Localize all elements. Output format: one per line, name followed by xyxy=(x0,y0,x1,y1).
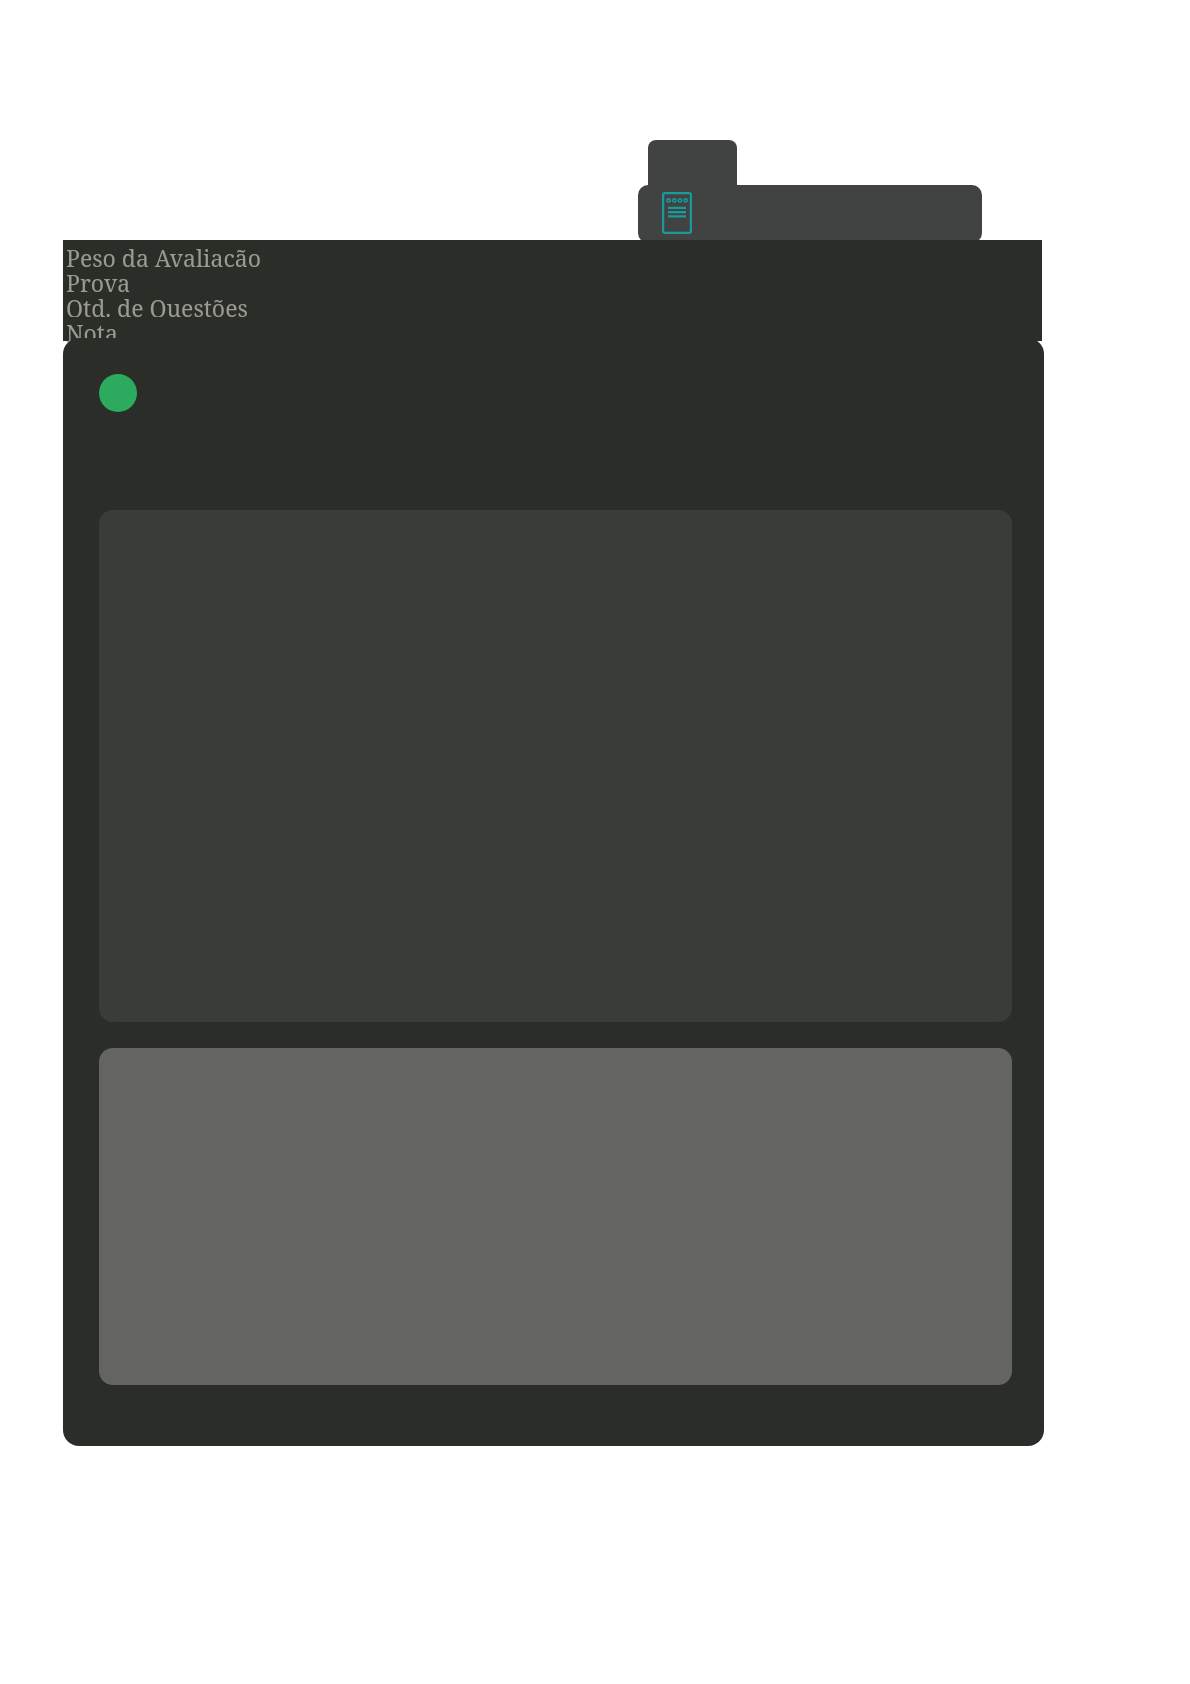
button[interactable]: Status xyxy=(99,374,137,412)
button[interactable]: Tab xyxy=(648,140,737,196)
staticText: Nota xyxy=(66,317,118,342)
staticText: Qtd. de Questões xyxy=(66,292,248,317)
staticText: Peso da Avaliação xyxy=(66,242,261,267)
button[interactable]: Document xyxy=(662,192,692,234)
staticText: Prova xyxy=(66,267,131,292)
